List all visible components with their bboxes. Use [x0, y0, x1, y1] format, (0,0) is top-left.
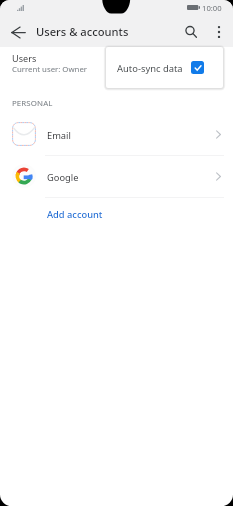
staticText: Users & accounts	[36, 24, 129, 39]
button[interactable]: Google	[0, 155, 233, 197]
button[interactable]: Add account	[0, 197, 233, 229]
staticText: PERSONAL	[12, 98, 53, 109]
staticText: Current user: Owner	[12, 64, 88, 75]
staticText: Google	[47, 171, 79, 184]
button[interactable]: Auto-sync data	[106, 47, 223, 88]
button[interactable]: Email	[0, 113, 233, 155]
staticText: Auto-sync data	[117, 62, 183, 75]
button[interactable]: More options	[205, 18, 233, 46]
staticText: 10:00	[202, 3, 222, 13]
button[interactable]: Search	[177, 18, 205, 46]
staticText: Email	[47, 129, 71, 142]
button[interactable]: Back	[4, 18, 32, 46]
staticText: Add account	[47, 208, 103, 221]
staticText: Users	[12, 52, 37, 64]
button[interactable]: Users	[0, 47, 233, 79]
